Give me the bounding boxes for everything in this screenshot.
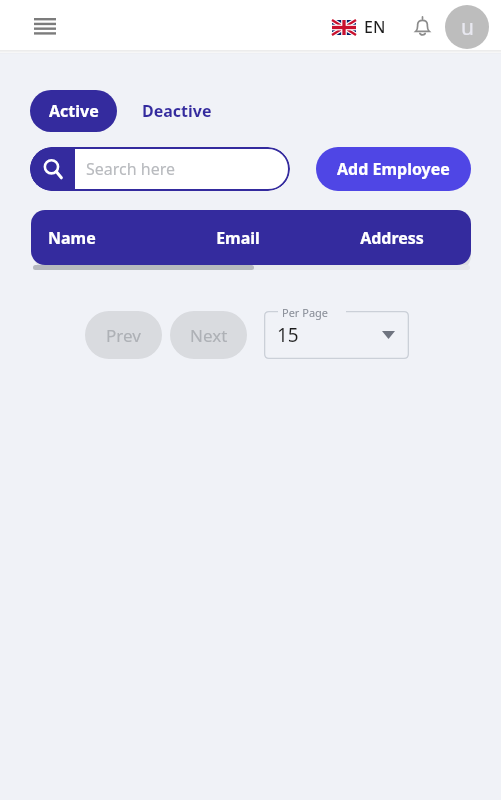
button[interactable]: Menu <box>28 10 62 44</box>
button[interactable]: EN <box>328 16 390 38</box>
button[interactable]: Add Employee <box>316 147 471 191</box>
staticText: Active <box>49 100 99 122</box>
button[interactable]: Notifications <box>407 12 437 42</box>
button[interactable]: Per Page <box>264 311 409 359</box>
staticText: 15 <box>277 322 299 348</box>
button[interactable]: Prev <box>85 311 162 359</box>
staticText: Email <box>163 227 313 249</box>
staticText: Name <box>48 227 163 249</box>
staticText: u <box>461 13 474 42</box>
staticText: Next <box>190 324 228 347</box>
staticText: Add Employee <box>337 158 450 180</box>
staticText: Address <box>313 227 471 249</box>
staticText: EN <box>364 16 386 38</box>
button[interactable]: Profile <box>445 5 489 49</box>
button[interactable]: Active <box>30 90 117 132</box>
button[interactable]: Next <box>170 311 247 359</box>
button[interactable]: Name <box>31 210 471 265</box>
button[interactable]: Deactive <box>117 90 237 132</box>
button[interactable]: Search here <box>30 147 290 191</box>
staticText: Per Page <box>282 305 329 320</box>
staticText: Prev <box>106 324 141 347</box>
staticText: Search here <box>86 158 176 180</box>
other: Open dropdown <box>382 331 395 339</box>
staticText: Deactive <box>142 100 212 122</box>
